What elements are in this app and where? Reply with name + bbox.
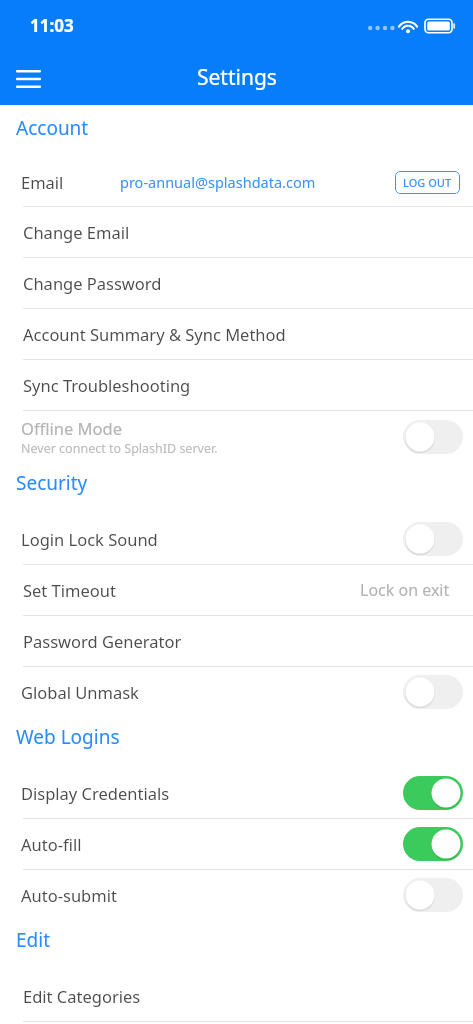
staticText: Security bbox=[16, 470, 88, 496]
button[interactable]: Sync Troubleshooting bbox=[0, 360, 473, 410]
staticText: Auto-submit bbox=[21, 884, 117, 906]
staticText: Email bbox=[21, 171, 120, 193]
other: Off bbox=[403, 675, 463, 709]
staticText: Auto-fill bbox=[21, 833, 82, 855]
staticText: Account Summary & Sync Method bbox=[23, 323, 286, 345]
staticText: Sync Troubleshooting bbox=[23, 374, 191, 396]
button[interactable]: Login Lock Sound bbox=[0, 514, 473, 564]
staticText: Display Credentials bbox=[21, 782, 170, 804]
button[interactable]: Email bbox=[0, 158, 473, 206]
staticText: Password Generator bbox=[23, 630, 182, 652]
other: Off bbox=[403, 522, 463, 556]
staticText: LOG OUT bbox=[403, 175, 452, 190]
button[interactable]: Edit Categories bbox=[0, 971, 473, 1021]
button[interactable]: Password Generator bbox=[0, 616, 473, 666]
staticText: pro-annual@splashdata.com bbox=[120, 172, 316, 192]
staticText: Edit bbox=[16, 927, 51, 953]
staticText: Login Lock Sound bbox=[21, 528, 158, 550]
staticText: Account bbox=[16, 115, 89, 141]
button[interactable]: Auto-submit bbox=[0, 870, 473, 920]
button[interactable]: Account Summary & Sync Method bbox=[0, 309, 473, 359]
button[interactable]: Change Password bbox=[0, 258, 473, 308]
other: On bbox=[403, 776, 463, 810]
button[interactable]: Global Unmask bbox=[0, 667, 473, 717]
staticText: Settings bbox=[197, 63, 277, 92]
button[interactable]: Auto-fill bbox=[0, 819, 473, 869]
staticText: Change Email bbox=[23, 221, 130, 243]
other: Off bbox=[403, 878, 463, 912]
staticText: Set Timeout bbox=[23, 579, 116, 601]
staticText: Offline Mode bbox=[21, 417, 122, 439]
staticText: Web Logins bbox=[16, 724, 120, 750]
staticText: 11:03 bbox=[30, 14, 74, 37]
staticText: Never connect to SplashID server. bbox=[21, 440, 218, 457]
button[interactable]: Set Timeout bbox=[0, 565, 473, 615]
button[interactable]: Display Credentials bbox=[0, 768, 473, 818]
button[interactable]: Change Email bbox=[0, 207, 473, 257]
staticText: Global Unmask bbox=[21, 681, 139, 703]
other: Off bbox=[403, 420, 463, 454]
staticText: Change Password bbox=[23, 272, 162, 294]
button[interactable]: LOG OUT bbox=[395, 171, 460, 194]
other: On bbox=[403, 827, 463, 861]
staticText: Edit Categories bbox=[23, 985, 141, 1007]
staticText: Lock on exit bbox=[360, 579, 450, 601]
button[interactable]: Offline Mode bbox=[0, 411, 473, 463]
button[interactable]: Open navigation menu bbox=[0, 52, 56, 105]
